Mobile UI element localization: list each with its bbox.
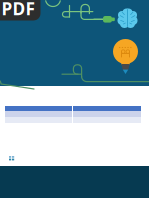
staticText: PDF <box>1 0 35 20</box>
button[interactable]: PDF <box>0 0 44 24</box>
